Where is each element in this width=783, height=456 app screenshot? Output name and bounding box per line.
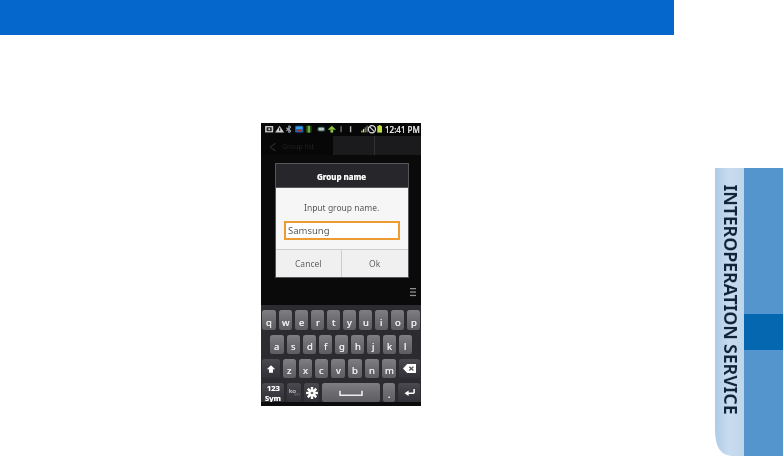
button[interactable]: m	[382, 359, 396, 378]
staticText: c	[319, 364, 324, 377]
staticText: ko	[289, 387, 296, 395]
staticText: j	[372, 340, 375, 353]
button[interactable]: i	[375, 310, 388, 330]
staticText: e	[299, 316, 305, 329]
staticText: s	[291, 340, 296, 353]
staticText: d	[307, 340, 313, 353]
button[interactable]: u	[359, 310, 372, 330]
staticText: Samsung	[288, 224, 330, 237]
button[interactable]: Space	[322, 383, 380, 402]
staticText: z	[287, 364, 292, 377]
button[interactable]: y	[343, 310, 356, 330]
button[interactable]: h	[351, 335, 364, 354]
button[interactable]: l	[399, 335, 412, 354]
button[interactable]: j	[367, 335, 380, 354]
button[interactable]: w	[279, 310, 292, 330]
staticText: o	[395, 316, 401, 329]
staticText: x	[303, 364, 309, 377]
staticText: INTEROPERATION SERVICE	[717, 184, 742, 414]
button[interactable]: Period	[383, 383, 395, 402]
staticText: n	[369, 364, 375, 377]
staticText: w	[282, 316, 290, 329]
button[interactable]: d	[303, 335, 316, 354]
button[interactable]: Shift	[262, 359, 280, 378]
staticText: Input group name.	[304, 202, 380, 214]
button[interactable]: g	[335, 335, 348, 354]
button[interactable]: a	[270, 335, 284, 354]
staticText: q	[266, 316, 272, 329]
staticText: m	[385, 364, 394, 377]
staticText: Group list	[282, 142, 315, 152]
staticText: Cancel	[295, 258, 322, 270]
staticText: r	[316, 316, 320, 329]
button[interactable]: s	[287, 335, 300, 354]
staticText: y	[347, 316, 352, 329]
button[interactable]: b	[348, 359, 362, 378]
staticText: 123	[267, 383, 280, 393]
button[interactable]: c	[315, 359, 328, 378]
button[interactable]: p	[407, 310, 420, 330]
button[interactable]: t	[327, 310, 340, 330]
staticText: a	[274, 340, 280, 353]
staticText: 12:41 PM	[385, 124, 420, 135]
button[interactable]: n	[365, 359, 379, 378]
staticText: p	[411, 316, 417, 329]
staticText: t	[332, 316, 336, 329]
button[interactable]: f	[319, 335, 332, 354]
staticText: .	[388, 388, 391, 400]
button[interactable]: Enter	[398, 383, 420, 402]
button[interactable]: Cancel	[276, 250, 341, 277]
staticText: Sym	[265, 393, 281, 402]
staticText: u	[363, 316, 369, 329]
staticText: g	[339, 340, 345, 353]
staticText: Group name	[317, 171, 367, 182]
button[interactable]: Change language	[287, 383, 301, 402]
button[interactable]: o	[391, 310, 404, 330]
staticText: i	[380, 316, 383, 329]
staticText: Ok	[369, 258, 381, 270]
button[interactable]: Ok	[342, 250, 408, 277]
staticText: k	[387, 340, 393, 353]
staticText: en	[294, 391, 300, 398]
button[interactable]: x	[299, 359, 312, 378]
button[interactable]: v	[331, 359, 345, 378]
button[interactable]: q	[262, 310, 276, 330]
button[interactable]: Keyboard settings	[304, 383, 319, 402]
button[interactable]: e	[295, 310, 308, 330]
staticText: v	[336, 364, 341, 377]
staticText: h	[355, 340, 361, 353]
button[interactable]: Backspace	[399, 359, 420, 378]
button[interactable]: k	[383, 335, 396, 354]
button[interactable]: z	[283, 359, 296, 378]
staticText: b	[352, 364, 358, 377]
button[interactable]: r	[311, 310, 324, 330]
staticText: f	[324, 340, 328, 353]
button[interactable]: Symbols	[262, 383, 284, 402]
staticText: l	[404, 340, 407, 353]
